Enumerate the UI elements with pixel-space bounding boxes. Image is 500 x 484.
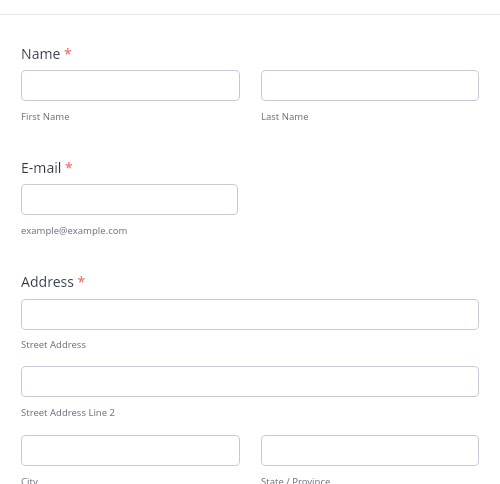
staticText: example@example.com	[21, 224, 128, 237]
button[interactable]: City	[21, 435, 240, 466]
staticText: Address *	[21, 272, 86, 291]
staticText: E-mail *	[21, 158, 73, 177]
staticText: City	[21, 475, 38, 484]
button[interactable]: State / Province	[261, 435, 479, 466]
staticText: Name *	[21, 44, 72, 63]
button[interactable]: E-mail	[21, 184, 238, 215]
button[interactable]: Last Name	[261, 70, 479, 101]
staticText: State / Province	[261, 475, 331, 484]
staticText: Last Name	[261, 110, 309, 123]
button[interactable]: First Name	[21, 70, 240, 101]
button[interactable]: Street Address Line 2	[21, 366, 479, 397]
staticText: Street Address	[21, 338, 86, 351]
staticText: Street Address Line 2	[21, 406, 115, 419]
staticText: First Name	[21, 110, 70, 123]
button[interactable]: Street Address	[21, 299, 479, 330]
